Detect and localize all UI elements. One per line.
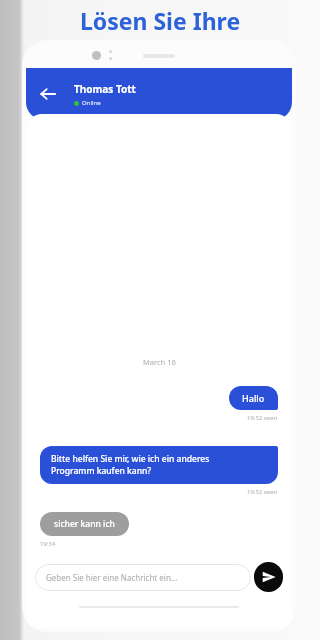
button[interactable]: Bitte helfen Sie mir, wie ich ein andere… bbox=[40, 446, 278, 484]
button[interactable]: Send bbox=[254, 562, 283, 592]
staticText: March 16 bbox=[143, 357, 176, 367]
button[interactable]: Back bbox=[32, 78, 64, 110]
staticText: 19:54 bbox=[40, 540, 56, 548]
staticText: Thomas Tott bbox=[74, 82, 136, 96]
staticText: Online bbox=[82, 99, 101, 107]
staticText: Lösen Sie Ihre bbox=[80, 5, 241, 36]
button[interactable]: sicher kann ich bbox=[40, 512, 129, 536]
staticText: Bitte helfen Sie mir, wie ich ein andere… bbox=[51, 453, 210, 477]
staticText: Hallo bbox=[242, 392, 265, 404]
staticText: 19:52 seen bbox=[247, 488, 278, 496]
button[interactable]: Hallo bbox=[229, 386, 278, 410]
button[interactable]: Geben Sie hier eine Nachricht ein... bbox=[35, 564, 251, 591]
staticText: sicher kann ich bbox=[54, 518, 115, 530]
staticText: Geben Sie hier eine Nachricht ein... bbox=[46, 572, 178, 583]
staticText: 19:52 seen bbox=[247, 414, 278, 422]
